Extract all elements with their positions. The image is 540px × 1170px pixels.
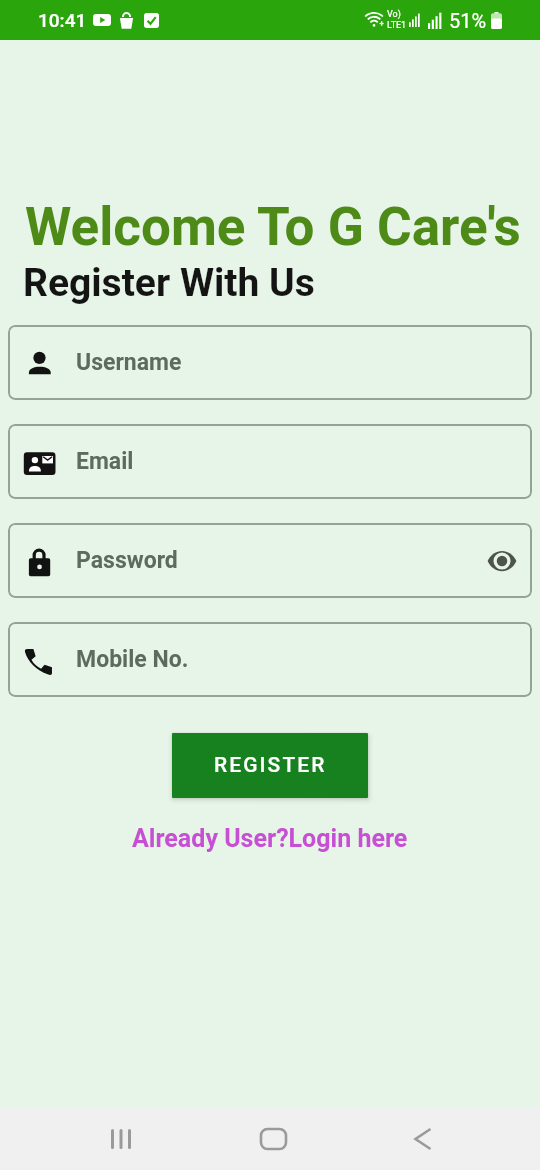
button[interactable]: Back — [393, 1113, 445, 1165]
staticText: Mobile No. — [76, 646, 189, 673]
button[interactable]: Recent apps — [95, 1113, 147, 1165]
staticText: Password — [76, 547, 178, 574]
staticText: Username — [76, 349, 182, 376]
button[interactable]: REGISTER — [172, 733, 368, 798]
button[interactable]: Home — [244, 1113, 296, 1165]
staticText: Register With Us — [23, 260, 315, 306]
button[interactable]: Show password — [482, 541, 522, 581]
staticText: Welcome To G Care's — [25, 196, 521, 258]
button[interactable]: Email — [8, 424, 532, 499]
staticText: 51% — [449, 9, 487, 32]
button[interactable]: Password — [8, 523, 532, 598]
staticText: 10:41 — [38, 9, 87, 31]
staticText: Vo) — [387, 9, 401, 20]
button[interactable]: Already User?Login here — [132, 824, 408, 853]
staticText: REGISTER — [214, 753, 327, 778]
button[interactable]: Username — [8, 325, 532, 400]
staticText: Email — [76, 448, 134, 475]
staticText: LTE1 — [387, 20, 407, 31]
button[interactable]: Mobile No. — [8, 622, 532, 697]
